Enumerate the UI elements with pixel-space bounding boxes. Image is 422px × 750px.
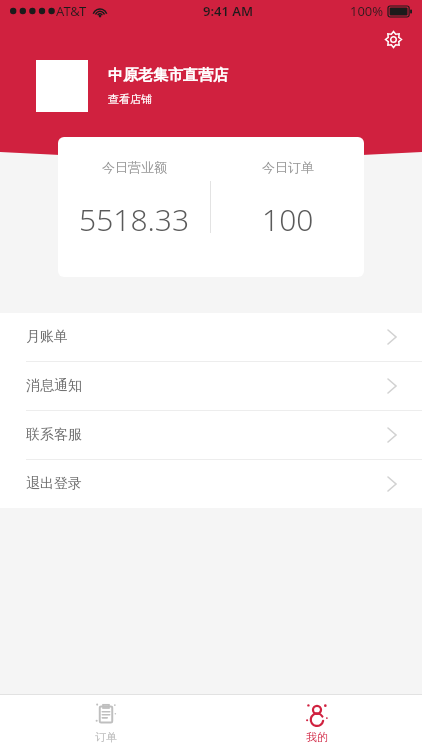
button[interactable]: 退出登录 bbox=[0, 460, 422, 508]
staticText: 我的 bbox=[306, 730, 328, 744]
button[interactable]: 中原老集市直营店 bbox=[36, 60, 422, 112]
staticText: 100 bbox=[262, 199, 314, 240]
staticText: 100% bbox=[350, 2, 384, 20]
staticText: 订单 bbox=[95, 730, 117, 744]
button[interactable]: 联系客服 bbox=[0, 411, 422, 459]
staticText: 联系客服 bbox=[26, 426, 82, 444]
staticText: 退出登录 bbox=[26, 475, 82, 493]
staticText: 今日订单 bbox=[262, 159, 314, 175]
staticText: 9:41 AM bbox=[203, 2, 254, 20]
button[interactable]: Settings bbox=[378, 24, 408, 54]
staticText: 今日营业额 bbox=[102, 159, 167, 175]
staticText: 消息通知 bbox=[26, 377, 82, 395]
staticText: 5518.33 bbox=[79, 199, 190, 240]
button[interactable]: 我的 bbox=[211, 695, 422, 750]
staticText: 查看店铺 bbox=[108, 92, 152, 106]
button[interactable]: 订单 bbox=[0, 695, 211, 750]
staticText: AT&T bbox=[56, 2, 87, 20]
button[interactable]: 月账单 bbox=[0, 313, 422, 361]
staticText: 月账单 bbox=[26, 328, 68, 346]
button[interactable]: 消息通知 bbox=[0, 362, 422, 410]
staticText: 中原老集市直营店 bbox=[108, 66, 228, 85]
